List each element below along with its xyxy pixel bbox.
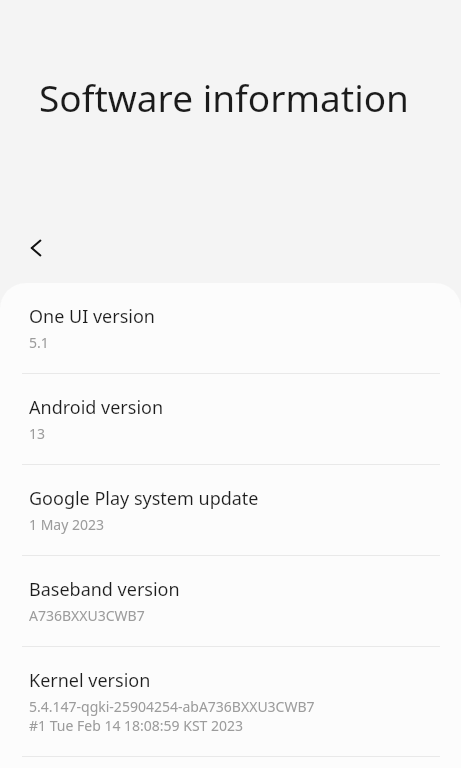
button[interactable]: One UI version	[0, 283, 461, 373]
staticText: One UI version	[29, 304, 155, 329]
staticText: Software information	[39, 72, 409, 122]
staticText: 1 May 2023	[29, 515, 105, 534]
button[interactable]: Baseband version	[0, 556, 461, 646]
staticText: 13	[29, 424, 46, 443]
staticText: A736BXXU3CWB7	[29, 606, 145, 625]
button[interactable]: Google Play system update	[0, 465, 461, 555]
staticText: #1 Tue Feb 14 18:08:59 KST 2023	[29, 716, 244, 735]
button[interactable]: Android version	[0, 374, 461, 464]
button[interactable]: Navigate up	[14, 224, 62, 272]
staticText: Kernel version	[29, 668, 151, 693]
staticText: 5.1	[29, 333, 49, 352]
staticText: Baseband version	[29, 577, 180, 602]
staticText: 5.4.147-qgki-25904254-abA736BXXU3CWB7	[29, 697, 315, 716]
staticText: Android version	[29, 395, 164, 420]
staticText: Google Play system update	[29, 486, 259, 511]
button[interactable]: Kernel version	[0, 647, 461, 756]
